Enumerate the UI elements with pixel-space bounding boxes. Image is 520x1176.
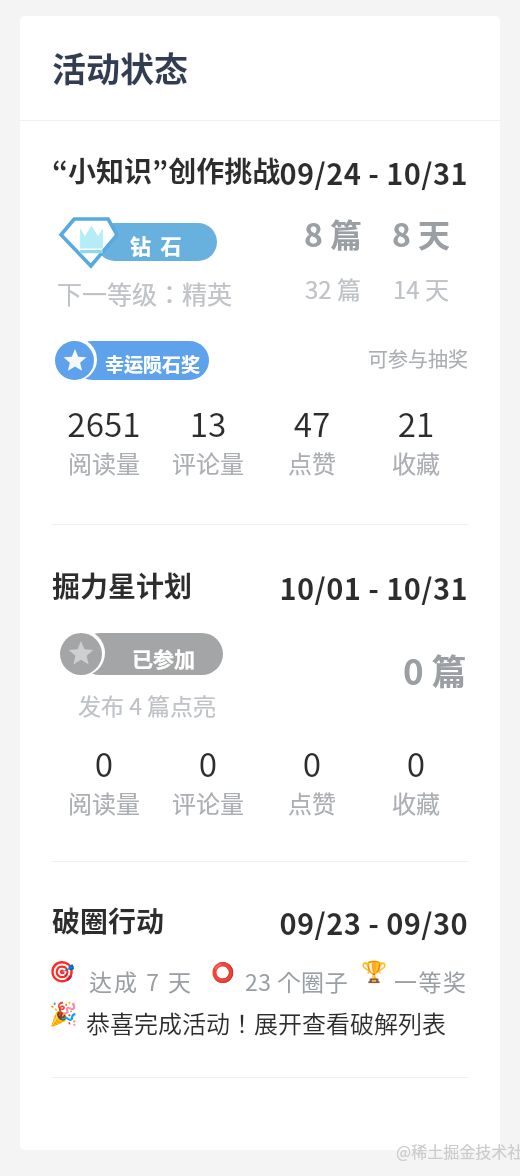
staticText: ⭕ [211,961,235,983]
staticText: 8 天 [361,210,481,256]
staticText: 0 [52,739,156,787]
staticText: 🎉 [49,1001,78,1028]
staticText: 23 个圈子 [245,964,349,997]
staticText: 0 [156,739,260,787]
staticText: 幸运陨石奖 [105,350,201,378]
staticText: 0 [364,739,468,787]
staticText: 32 篇 [273,271,393,306]
staticText: 钻 石 [130,230,182,260]
staticText: 0 [260,739,364,787]
staticText: 47 [260,399,364,447]
button[interactable]: 钻石等级 [60,215,240,275]
staticText: 收藏 [364,445,468,480]
staticText: 14 天 [361,271,481,306]
staticText: 09/24 - 10/31 [266,151,468,193]
button[interactable]: 已参加 [60,633,224,679]
staticText: 阅读量 [52,445,156,480]
staticText: 下一等级：精英 [57,275,233,311]
staticText: 09/23 - 09/30 [266,901,468,943]
staticText: 已参加 [132,643,195,673]
staticText: @稀土掘金技术社区 [396,1139,520,1162]
staticText: 点赞 [260,445,364,480]
staticText: 21 [364,399,468,447]
button[interactable]: 幸运陨石奖 [55,341,211,384]
staticText: 一等奖 [394,964,468,997]
staticText: 发布 4 篇点亮 [78,688,217,721]
staticText: 掘力星计划 [52,565,193,606]
staticText: 达成 7 天 [89,964,194,997]
staticText: 8 篇 [273,210,393,256]
staticText: 评论量 [156,445,260,480]
staticText: 恭喜完成活动！展开查看破解列表 [86,1005,446,1040]
staticText: 破圈行动 [52,900,165,941]
staticText: “小知识”创作挑战 [52,150,281,191]
staticText: 点赞 [260,785,364,820]
staticText: 🎯 [49,960,76,985]
staticText: 0 篇 [403,644,467,695]
staticText: 收藏 [364,785,468,820]
staticText: 13 [156,399,260,447]
staticText: 可参与抽奖 [368,344,468,373]
staticText: 2651 [52,399,156,447]
staticText: 活动状态 [52,43,188,92]
staticText: 阅读量 [52,785,156,820]
staticText: 评论量 [156,785,260,820]
staticText: 🏆 [361,960,388,985]
staticText: 10/01 - 10/31 [266,566,468,608]
